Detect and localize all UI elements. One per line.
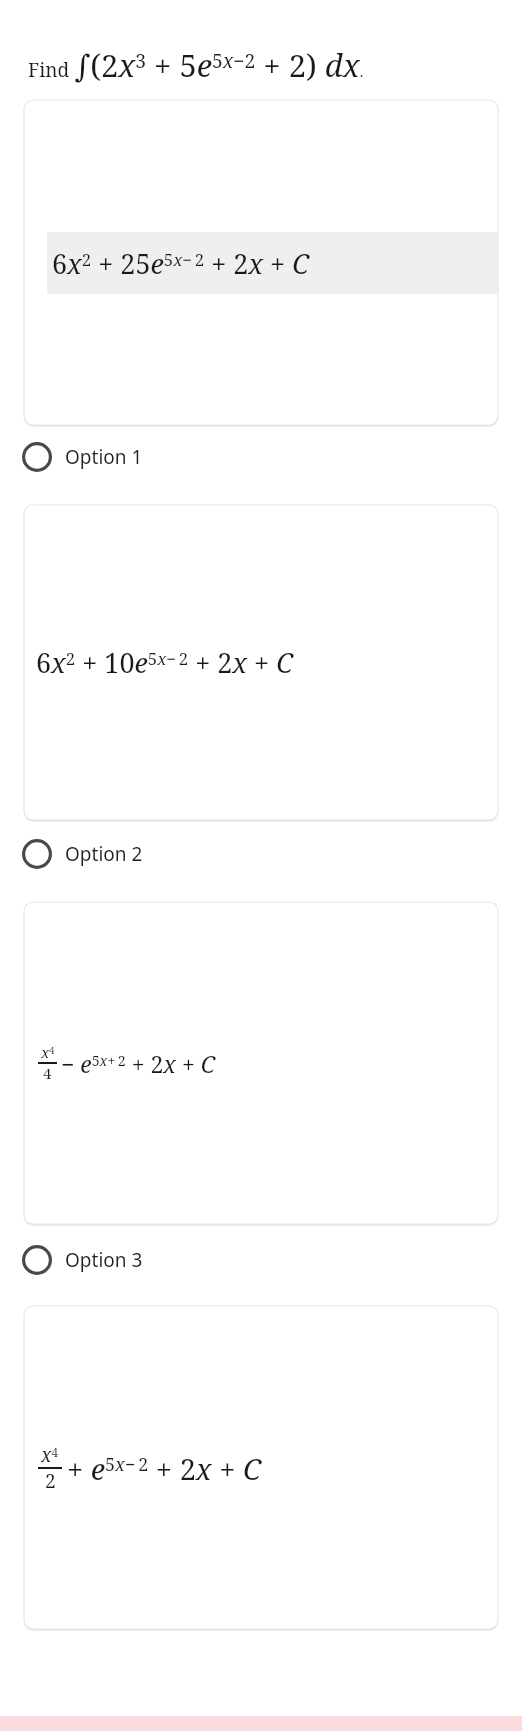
staticText: Find ∫(2x3 + 5e5x−2 + 2) dx.: [28, 44, 364, 86]
staticText: x4: [41, 1042, 55, 1063]
staticText: Option 2: [65, 841, 143, 867]
other: Select Option 2: [22, 839, 52, 869]
button[interactable]: Select Option 1: [0, 431, 522, 483]
staticText: 4: [43, 1063, 52, 1084]
staticText: x4: [41, 1442, 59, 1468]
staticText: 6x2 + 10e5x− 2 + 2x + C: [36, 644, 294, 681]
staticText: − e5x+ 2 + 2x + C: [61, 1048, 216, 1079]
button[interactable]: x4: [24, 902, 498, 1224]
button[interactable]: Select Option 2: [0, 828, 522, 880]
staticText: Option 3: [65, 1247, 143, 1273]
staticText: 6x2 + 25e5x− 2 + 2x + C: [52, 245, 310, 282]
staticText: Option 1: [65, 444, 143, 470]
staticText: + e5x− 2 + 2x + C: [67, 1449, 262, 1488]
other: Select Option 3: [22, 1245, 52, 1275]
button[interactable]: Select Option 3: [0, 1234, 522, 1286]
button[interactable]: x4: [24, 1306, 498, 1629]
staticText: 2: [45, 1468, 56, 1494]
button[interactable]: 6x2 + 25e5x− 2 + 2x + C: [24, 100, 498, 425]
button[interactable]: 6x2 + 10e5x− 2 + 2x + C: [24, 505, 498, 820]
other: Select Option 1: [22, 442, 52, 472]
